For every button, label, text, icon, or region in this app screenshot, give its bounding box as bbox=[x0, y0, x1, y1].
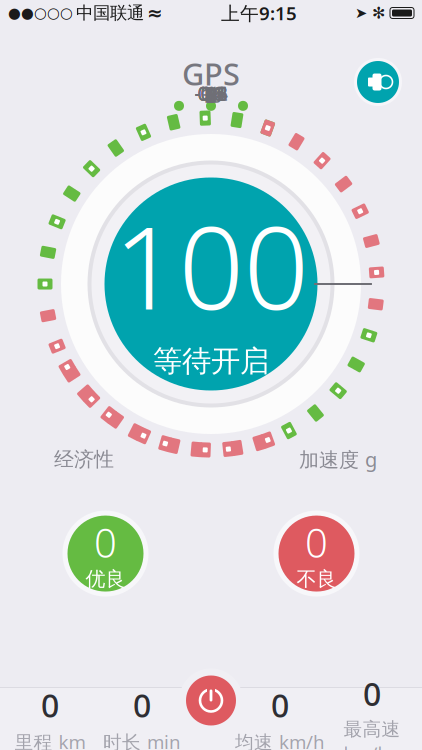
button[interactable]: 0 bbox=[62, 511, 148, 597]
button[interactable]: 0 bbox=[4, 684, 96, 750]
staticText: 0 bbox=[271, 684, 289, 726]
staticText: 优良 bbox=[85, 567, 125, 591]
staticText: 中国联通 bbox=[76, 2, 144, 24]
staticText: 最高速 km/h bbox=[343, 718, 400, 750]
staticText: ●●○○○ bbox=[8, 5, 73, 21]
staticText: GPS bbox=[182, 53, 240, 94]
staticText: 0 bbox=[363, 672, 381, 715]
staticText: ✻ bbox=[372, 4, 385, 22]
staticText: 时长 min bbox=[103, 729, 181, 750]
staticText: 9 bbox=[205, 82, 216, 108]
staticText: 经济性 bbox=[54, 447, 114, 472]
staticText: 100 bbox=[113, 189, 308, 341]
button[interactable]: Sound bbox=[354, 58, 402, 106]
staticText: 0 bbox=[305, 516, 328, 569]
staticText: 0.2 bbox=[197, 80, 224, 106]
staticText: 8 bbox=[205, 82, 216, 108]
staticText: 5 bbox=[205, 82, 216, 108]
staticText: 3 bbox=[205, 82, 216, 108]
staticText: 不良 bbox=[296, 567, 336, 591]
button[interactable]: 0 bbox=[273, 511, 359, 597]
staticText: 0.8 bbox=[197, 80, 224, 106]
staticText: 0 bbox=[205, 80, 216, 106]
staticText: 0.4 bbox=[197, 80, 224, 106]
button[interactable]: 0 bbox=[326, 672, 418, 750]
staticText: 0 bbox=[94, 516, 117, 569]
staticText: 上午9:15 bbox=[221, 1, 297, 25]
staticText: 等待开启 bbox=[153, 343, 269, 379]
button[interactable]: 0 bbox=[96, 684, 188, 750]
staticText: 4 bbox=[205, 82, 216, 108]
staticText: 0 bbox=[41, 684, 59, 726]
staticText: 里程 km bbox=[14, 729, 85, 750]
button[interactable]: 0 bbox=[234, 684, 326, 750]
staticText: ➤ bbox=[355, 5, 367, 21]
staticText: 1 bbox=[205, 82, 216, 108]
staticText: 0 bbox=[133, 684, 151, 726]
staticText: 2 bbox=[205, 82, 216, 108]
staticText: -0.6 bbox=[194, 80, 227, 106]
staticText: 均速 km/h bbox=[235, 729, 325, 750]
staticText: 6 bbox=[205, 82, 216, 108]
staticText: -0.4 bbox=[194, 80, 227, 106]
staticText: ≈ bbox=[147, 2, 163, 24]
staticText: 加速度 g bbox=[299, 446, 377, 473]
staticText: 0 bbox=[205, 82, 216, 108]
staticText: 0.6 bbox=[197, 80, 224, 106]
staticText: -1 bbox=[202, 80, 219, 106]
staticText: -0.2 bbox=[194, 80, 227, 106]
staticText: 10 bbox=[200, 82, 222, 108]
staticText: 1 bbox=[205, 80, 216, 106]
button[interactable]: Start bbox=[186, 675, 236, 725]
staticText: -0.8 bbox=[194, 80, 227, 106]
staticText: 7 bbox=[205, 82, 216, 108]
